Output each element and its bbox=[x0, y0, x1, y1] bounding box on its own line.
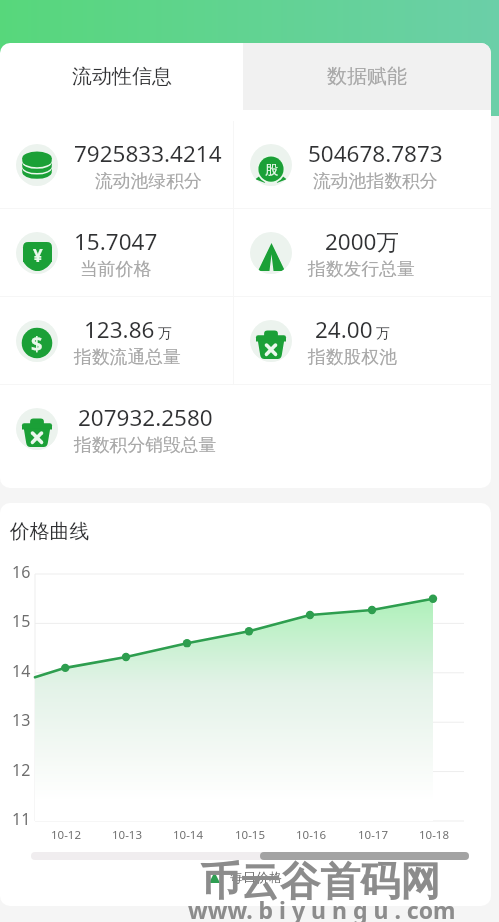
staticText: 指数发行总量 bbox=[308, 258, 415, 280]
staticText: 24.00 bbox=[315, 314, 373, 345]
other: 指数股权池 bbox=[250, 320, 292, 362]
staticText: 10-16 bbox=[296, 827, 327, 843]
staticText: www. b i y u n g u . com bbox=[188, 894, 456, 922]
staticText: 504678.7873 bbox=[308, 138, 443, 169]
staticText: 12 bbox=[12, 759, 31, 781]
staticText: 10-13 bbox=[112, 827, 143, 843]
staticText: 万 bbox=[376, 325, 390, 343]
button[interactable]: 流动池指数积分 bbox=[250, 121, 443, 208]
staticText: 15 bbox=[12, 610, 31, 632]
staticText: $ bbox=[31, 330, 43, 357]
staticText: 万 bbox=[158, 325, 172, 343]
staticText: 指数流通总量 bbox=[74, 346, 181, 368]
staticText: 指数积分销毁总量 bbox=[74, 434, 217, 456]
staticText: 数据赋能 bbox=[327, 64, 407, 89]
other: 流动池指数积分 bbox=[250, 144, 292, 186]
staticText: 流动池指数积分 bbox=[313, 170, 438, 192]
staticText: 指数股权池 bbox=[308, 346, 397, 368]
staticText: 流动池绿积分 bbox=[95, 170, 202, 192]
other: 当前价格 bbox=[16, 232, 58, 274]
staticText: 11 bbox=[12, 808, 31, 830]
staticText: 股 bbox=[265, 161, 278, 177]
other: 指数积分销毁总量 bbox=[16, 408, 58, 450]
staticText: ¥ bbox=[33, 244, 43, 267]
button[interactable]: 当前价格 bbox=[16, 209, 158, 296]
button[interactable]: 指数流通总量 bbox=[16, 297, 181, 384]
button[interactable]: 指数发行总量 bbox=[250, 209, 415, 296]
staticText: 每日价格 bbox=[230, 869, 282, 885]
staticText: 10-12 bbox=[51, 827, 82, 843]
button[interactable]: 指数积分销毁总量 bbox=[16, 385, 217, 472]
staticText: 123.86 bbox=[84, 314, 155, 345]
staticText: 15.7047 bbox=[74, 226, 158, 257]
staticText: 16 bbox=[12, 561, 31, 583]
staticText: 2000万 bbox=[325, 226, 399, 257]
staticText: 10-17 bbox=[358, 827, 389, 843]
button[interactable]: 指数股权池 bbox=[250, 297, 397, 384]
button[interactable]: 数据赋能 bbox=[243, 43, 491, 110]
staticText: 价格曲线 bbox=[10, 519, 90, 544]
staticText: 10-15 bbox=[235, 827, 266, 843]
other: 指数流通总量 bbox=[16, 320, 58, 362]
staticText: 10-18 bbox=[419, 827, 450, 843]
staticText: 207932.2580 bbox=[78, 402, 213, 433]
staticText: 币云谷首码网 bbox=[200, 856, 440, 906]
staticText: 10-14 bbox=[173, 827, 204, 843]
other: 指数发行总量 bbox=[250, 232, 292, 274]
button[interactable]: 流动池绿积分 bbox=[16, 121, 222, 208]
staticText: 7925833.4214 bbox=[74, 138, 222, 169]
button[interactable]: 每日价格 bbox=[209, 869, 282, 885]
staticText: 14 bbox=[12, 660, 31, 682]
staticText: 流动性信息 bbox=[72, 64, 172, 89]
button[interactable]: 流动性信息 bbox=[0, 43, 243, 110]
button[interactable]: Scroll chart bbox=[31, 852, 469, 860]
staticText: 13 bbox=[12, 709, 31, 731]
staticText: 当前价格 bbox=[80, 258, 152, 280]
other: 流动池绿积分 bbox=[16, 144, 58, 186]
